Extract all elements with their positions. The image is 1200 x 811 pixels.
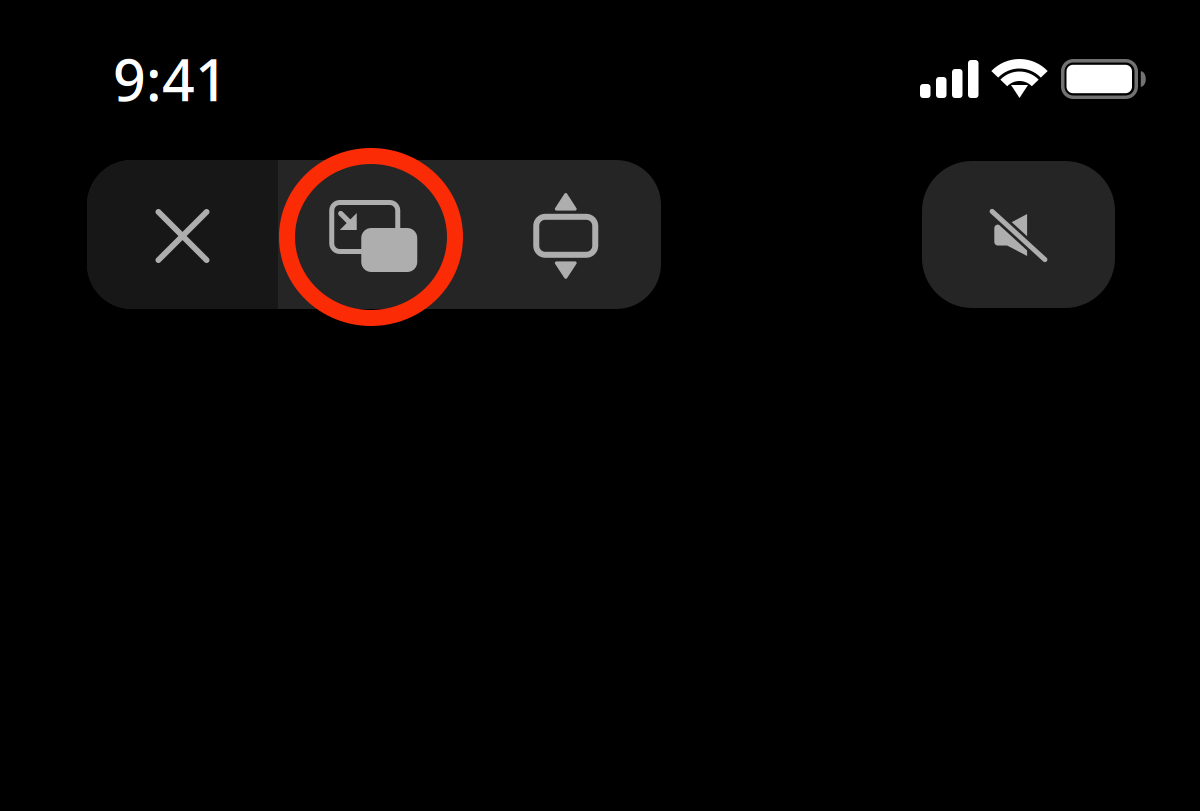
button[interactable]: Picture in Picture bbox=[278, 160, 469, 309]
button[interactable]: End call bbox=[87, 160, 278, 309]
staticText: 9:41 bbox=[113, 41, 228, 117]
button[interactable]: Mute bbox=[922, 161, 1115, 308]
button[interactable]: Expand bbox=[469, 160, 661, 309]
